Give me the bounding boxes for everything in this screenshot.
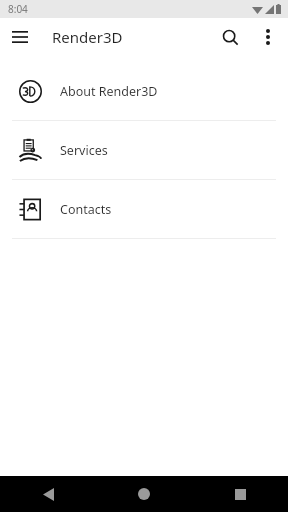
button[interactable]: More options xyxy=(250,19,286,55)
staticText: About Render3D xyxy=(60,83,158,100)
button[interactable]: Home xyxy=(96,476,192,512)
button[interactable]: Services xyxy=(0,121,288,179)
button[interactable]: Search xyxy=(210,18,250,56)
button[interactable]: Open navigation drawer xyxy=(0,18,40,56)
button[interactable]: Recent apps xyxy=(192,476,288,512)
staticText: Services xyxy=(60,142,108,159)
staticText: 8:04 xyxy=(8,2,28,16)
staticText: Render3D xyxy=(52,27,123,47)
button[interactable]: Back xyxy=(0,476,96,512)
button[interactable]: Contacts xyxy=(0,180,288,238)
button[interactable]: About Render3D xyxy=(0,62,288,120)
staticText: Contacts xyxy=(60,201,112,218)
